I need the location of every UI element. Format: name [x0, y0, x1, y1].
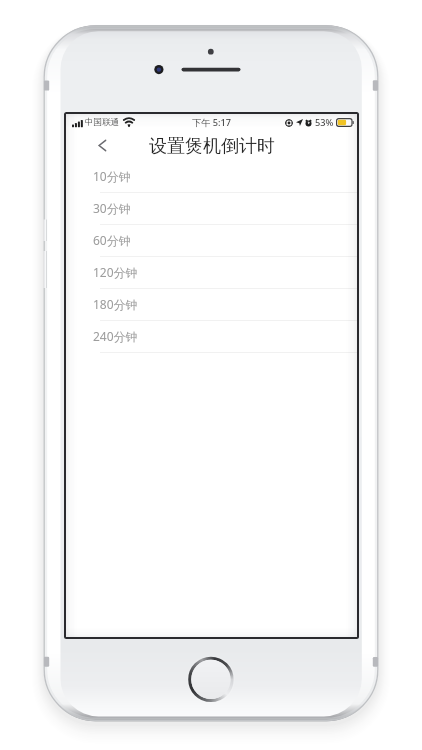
staticText: 60分钟 [93, 232, 131, 248]
button[interactable]: 10分钟 [66, 160, 357, 192]
button[interactable]: 240分钟 [66, 320, 357, 352]
button[interactable]: 120分钟 [66, 256, 357, 288]
staticText: 设置煲机倒计时 [149, 135, 275, 158]
staticText: 30分钟 [93, 200, 131, 216]
button[interactable]: 返回 [86, 130, 118, 160]
button[interactable]: 180分钟 [66, 288, 357, 320]
staticText: 53% [315, 116, 334, 129]
staticText: 240分钟 [93, 328, 138, 344]
staticText: 下午 5:17 [192, 116, 232, 129]
button[interactable]: 60分钟 [66, 224, 357, 256]
staticText: 中国联通 [85, 117, 120, 128]
staticText: 10分钟 [93, 168, 131, 184]
staticText: 180分钟 [93, 296, 138, 312]
button[interactable]: 30分钟 [66, 192, 357, 224]
staticText: 120分钟 [93, 264, 138, 280]
